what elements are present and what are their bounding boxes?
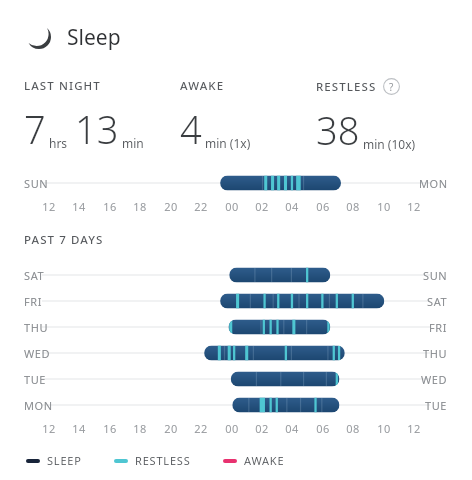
- button[interactable]: SLEEP: [26, 453, 82, 468]
- staticText: 22: [187, 421, 215, 436]
- staticText: 04: [278, 421, 306, 436]
- button[interactable]: WED: [0, 340, 472, 366]
- button[interactable]: RESTLESS: [114, 453, 191, 468]
- staticText: RESTLESS: [135, 453, 191, 468]
- staticText: 16: [96, 199, 124, 214]
- staticText: AWAKE: [244, 453, 285, 468]
- staticText: WED: [421, 372, 448, 387]
- button[interactable]: AWAKE: [223, 453, 285, 468]
- staticText: 10: [370, 199, 398, 214]
- staticText: 12: [400, 421, 428, 436]
- button[interactable]: SUN: [0, 170, 472, 196]
- button[interactable]: FRI: [0, 288, 472, 314]
- staticText: TUE: [425, 398, 448, 413]
- staticText: RESTLESS: [316, 79, 377, 95]
- staticText: 08: [339, 421, 367, 436]
- button[interactable]: SAT: [0, 262, 472, 288]
- staticText: 20: [157, 199, 185, 214]
- staticText: SAT: [427, 294, 448, 309]
- staticText: SAT: [24, 268, 45, 283]
- staticText: 06: [309, 199, 337, 214]
- staticText: 02: [248, 199, 276, 214]
- button[interactable]: Help about restless sleep: [383, 78, 400, 95]
- staticText: AWAKE: [180, 78, 225, 94]
- staticText: 00: [218, 421, 246, 436]
- staticText: Sleep: [67, 23, 121, 52]
- staticText: MON: [24, 398, 53, 413]
- staticText: min: [122, 135, 144, 151]
- staticText: 12: [400, 199, 428, 214]
- button[interactable]: THU: [0, 314, 472, 340]
- staticText: THU: [24, 320, 49, 335]
- staticText: ?: [389, 80, 394, 94]
- staticText: 12: [35, 421, 63, 436]
- staticText: MON: [419, 176, 448, 191]
- staticText: 16: [96, 421, 124, 436]
- staticText: 06: [309, 421, 337, 436]
- staticText: SUN: [423, 268, 448, 283]
- staticText: WED: [24, 346, 51, 361]
- staticText: SUN: [24, 176, 49, 191]
- button[interactable]: TUE: [0, 366, 472, 392]
- staticText: 4: [180, 103, 202, 155]
- staticText: 7: [24, 103, 46, 155]
- staticText: 20: [157, 421, 185, 436]
- staticText: THU: [423, 346, 448, 361]
- staticText: PAST 7 DAYS: [24, 232, 104, 248]
- staticText: 12: [35, 199, 63, 214]
- staticText: hrs: [49, 135, 68, 151]
- button[interactable]: Sleep: [24, 22, 472, 52]
- staticText: 22: [187, 199, 215, 214]
- staticText: 18: [126, 199, 154, 214]
- staticText: 08: [339, 199, 367, 214]
- staticText: min (10x): [363, 136, 416, 152]
- staticText: 00: [218, 199, 246, 214]
- staticText: 14: [65, 199, 93, 214]
- staticText: 13: [75, 103, 119, 155]
- staticText: LAST NIGHT: [24, 78, 101, 94]
- staticText: 04: [278, 199, 306, 214]
- staticText: 14: [65, 421, 93, 436]
- staticText: SLEEP: [47, 453, 82, 468]
- staticText: 02: [248, 421, 276, 436]
- staticText: FRI: [24, 294, 43, 309]
- staticText: 18: [126, 421, 154, 436]
- staticText: 38: [316, 104, 360, 156]
- button[interactable]: MON: [0, 392, 472, 418]
- staticText: TUE: [24, 372, 47, 387]
- staticText: 10: [370, 421, 398, 436]
- staticText: min (1x): [205, 135, 251, 151]
- staticText: FRI: [429, 320, 448, 335]
